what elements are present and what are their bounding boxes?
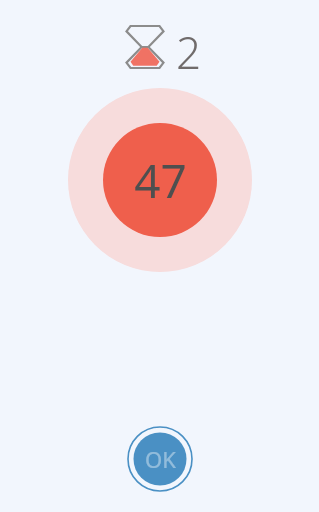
button[interactable]: OK <box>127 426 193 492</box>
other: Remaining attempts <box>125 24 165 70</box>
button[interactable]: 47 <box>68 88 252 272</box>
staticText: 47 <box>134 149 187 212</box>
staticText: OK <box>145 444 176 474</box>
staticText: 2 <box>176 22 202 82</box>
